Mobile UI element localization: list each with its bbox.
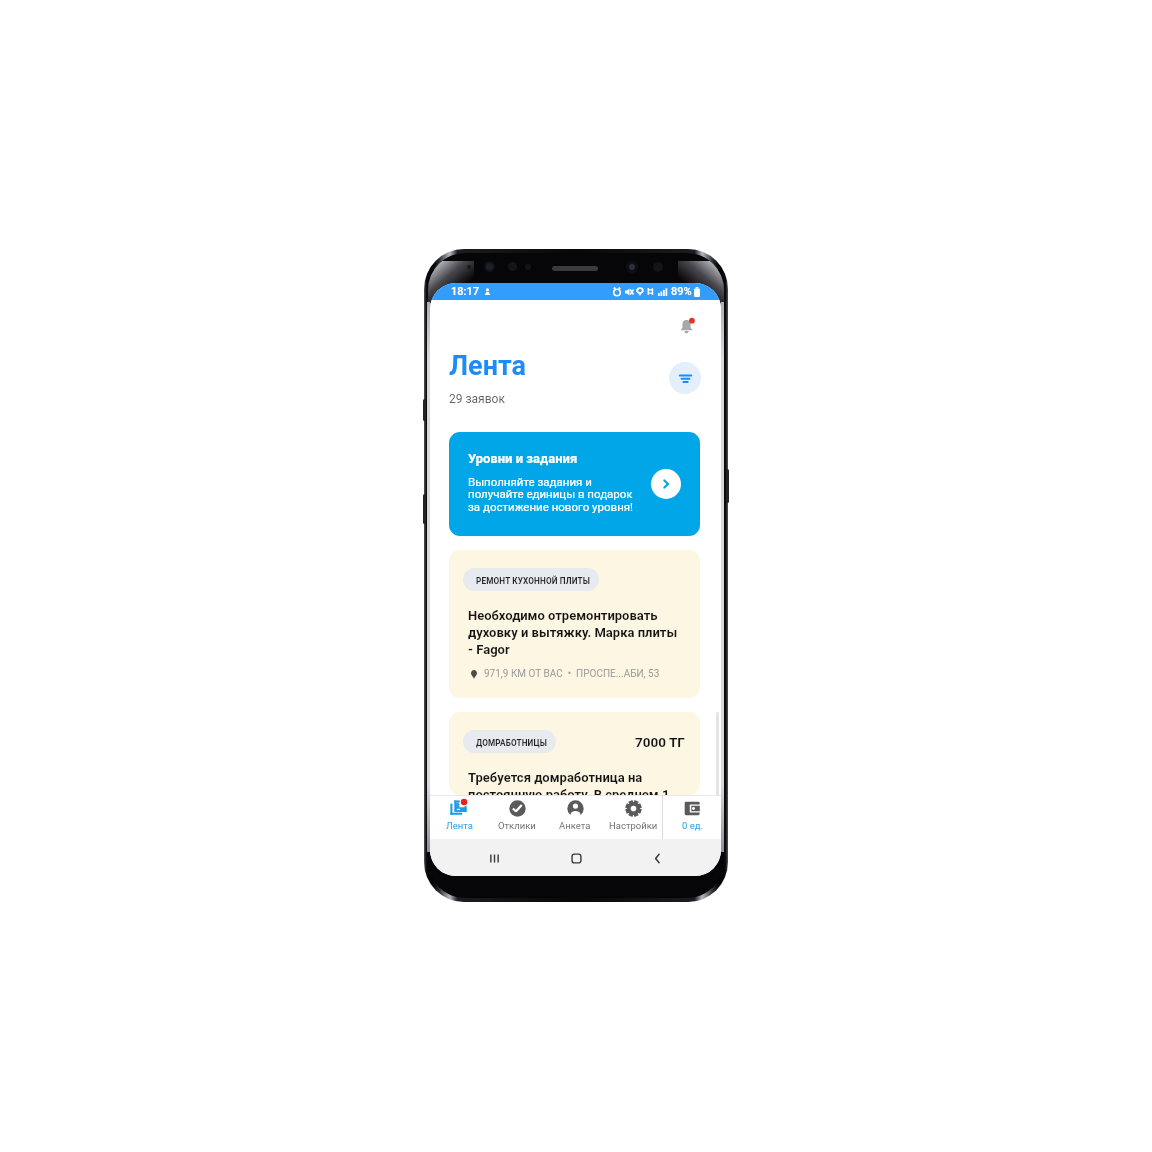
button[interactable]: Home	[565, 847, 587, 869]
staticText: Лента	[446, 820, 473, 831]
staticText: 29 заявок	[449, 392, 505, 406]
staticText: ДОМРАБОТНИЦЫ	[476, 738, 548, 748]
button[interactable]: Profile	[546, 795, 604, 839]
staticText: 0 ед.	[682, 820, 703, 831]
staticText: Уровни и задания	[468, 451, 578, 466]
staticText: Выполняйте задания и получайте единицы в…	[468, 475, 634, 514]
button[interactable]: РЕМОНТ КУХОННОЙ ПЛИТЫ	[449, 550, 700, 698]
staticText: Необходимо отремонтировать духовку и выт…	[468, 608, 678, 658]
button[interactable]: Settings	[604, 795, 662, 839]
staticText: 7000 ТГ	[635, 734, 685, 750]
button[interactable]: Filter	[669, 362, 701, 394]
staticText: Требуется домработница на постоянную раб…	[468, 770, 670, 795]
button[interactable]: Open levels and tasks	[651, 469, 681, 499]
staticText: РЕМОНТ КУХОННОЙ ПЛИТЫ	[476, 576, 591, 586]
staticText: 971,9 КМ ОТ ВАС • ПРОСПЕ...АБИ, 53	[484, 668, 660, 680]
staticText: Настройки	[609, 820, 658, 831]
button[interactable]: Notifications	[671, 311, 701, 341]
staticText: 18:17	[451, 285, 479, 298]
button[interactable]: Back	[646, 847, 668, 869]
button[interactable]: Responses	[488, 795, 546, 839]
staticText: 89%	[671, 285, 692, 298]
button[interactable]: Balance	[663, 795, 721, 839]
button[interactable]: ДОМРАБОТНИЦЫ	[449, 712, 700, 795]
staticText: Лента	[449, 350, 527, 382]
button[interactable]: Уровни и задания	[449, 432, 700, 536]
staticText: Анкета	[559, 820, 591, 831]
button[interactable]: Feed	[430, 795, 488, 839]
button[interactable]: Recent apps	[483, 847, 505, 869]
staticText: Отклики	[498, 820, 536, 831]
